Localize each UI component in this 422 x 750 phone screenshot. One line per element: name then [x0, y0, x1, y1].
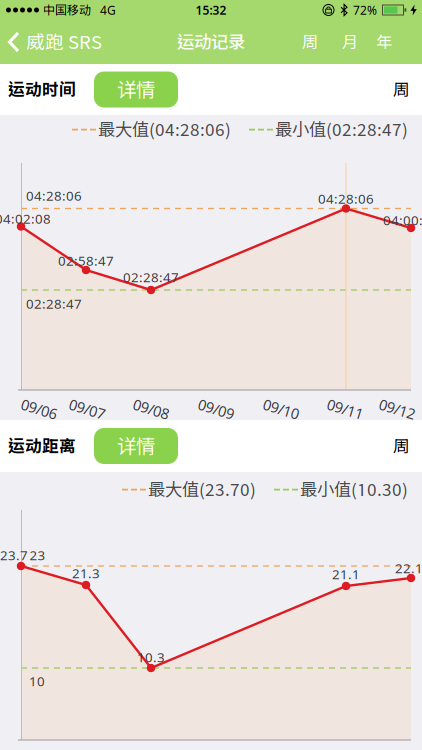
staticText: 最大值(23.70): [148, 479, 256, 500]
staticText: 21.1: [332, 565, 360, 583]
staticText: 详情: [117, 435, 155, 457]
staticText: 周: [393, 80, 410, 99]
staticText: 运动时间: [8, 80, 76, 99]
staticText: 运动距离: [8, 436, 76, 456]
staticText: 23: [29, 546, 45, 564]
staticText: 21.3: [72, 564, 100, 582]
staticText: 运动记录: [177, 32, 245, 52]
staticText: 年: [376, 33, 392, 51]
button[interactable]: 详情: [94, 71, 178, 107]
staticText: 04:28:06: [318, 190, 374, 207]
staticText: 23.7: [0, 546, 28, 564]
staticText: 最小值(10.30): [300, 479, 408, 500]
button[interactable]: 详情: [94, 428, 178, 464]
staticText: 09/11: [326, 399, 363, 419]
staticText: 02:28:47: [26, 295, 82, 312]
staticText: 09/07: [68, 399, 105, 419]
staticText: 04:28:06: [26, 187, 82, 204]
staticText: 09/06: [20, 399, 57, 419]
staticText: 04:00:30: [383, 211, 422, 229]
button[interactable]: 周: [302, 33, 318, 51]
staticText: 72%: [353, 2, 377, 18]
staticText: 09/08: [132, 399, 169, 419]
staticText: 22.1: [395, 559, 422, 577]
button[interactable]: 月: [342, 33, 358, 51]
staticText: 4G: [100, 2, 116, 18]
staticText: 详情: [117, 78, 155, 101]
staticText: 最大值(04:28:06): [98, 119, 231, 140]
staticText: 15:32: [195, 2, 226, 18]
staticText: 09/10: [262, 399, 299, 419]
staticText: 10.3: [137, 648, 165, 666]
staticText: 周: [393, 436, 410, 456]
staticText: 10: [29, 672, 45, 690]
staticText: 04:02:08: [0, 210, 51, 227]
staticText: 中国移动: [43, 3, 91, 17]
staticText: 周: [302, 33, 318, 51]
staticText: 02:28:47: [123, 268, 179, 286]
staticText: 02:58:47: [58, 252, 114, 269]
staticText: 最小值(02:28:47): [275, 119, 408, 140]
staticText: 威跑 SRS: [26, 31, 102, 53]
button[interactable]: 威跑 SRS: [8, 31, 102, 53]
staticText: 09/12: [378, 399, 415, 419]
staticText: 09/09: [197, 399, 234, 419]
staticText: 月: [342, 33, 358, 51]
button[interactable]: 年: [376, 33, 392, 51]
